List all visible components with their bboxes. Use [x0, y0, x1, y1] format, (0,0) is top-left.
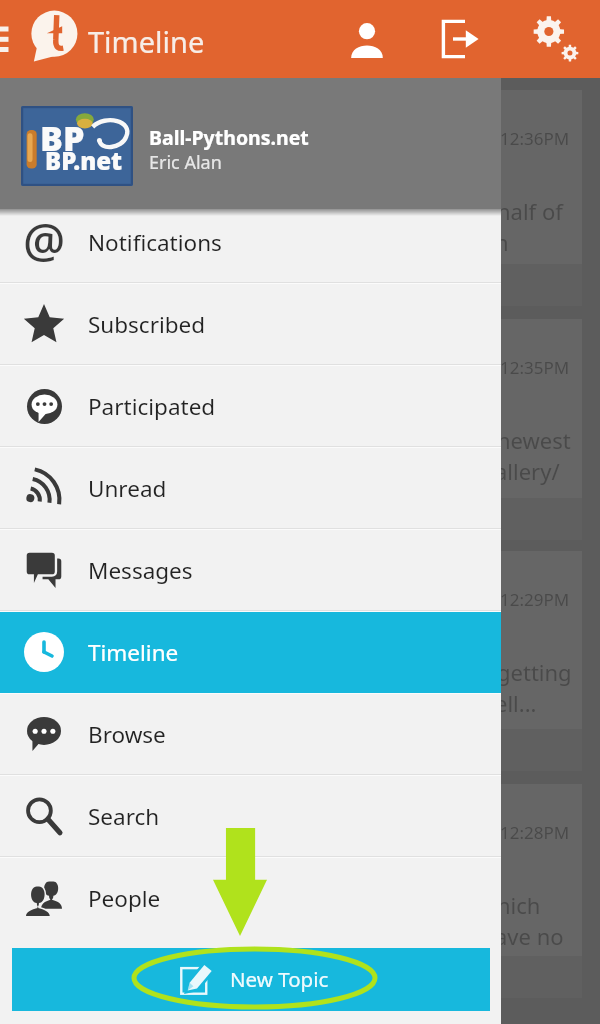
button[interactable]: Timeline [0, 611, 501, 693]
staticText: People [88, 883, 161, 914]
staticText: Timeline [88, 22, 205, 61]
staticText: Browse [88, 719, 166, 750]
button[interactable]: Settings [515, 0, 595, 78]
staticText: ell... [495, 688, 537, 718]
button[interactable]: New Topic [12, 948, 490, 1011]
button[interactable]: Unread [0, 447, 501, 529]
staticText: Search [88, 801, 160, 832]
staticText: half of [497, 196, 563, 226]
staticText: Participated [88, 391, 216, 422]
staticText: h [495, 227, 509, 257]
button[interactable]: Profile [327, 0, 407, 78]
button[interactable]: BP.net [0, 78, 501, 209]
staticText: Notifications [88, 227, 222, 258]
staticText: Timeline [88, 637, 179, 668]
button[interactable]: Search [0, 775, 501, 857]
staticText: Subscribed [88, 309, 206, 340]
staticText: 12:28PM [500, 821, 570, 844]
staticText: hich [497, 890, 541, 920]
button[interactable]: Browse [0, 693, 501, 775]
staticText: BP.net [45, 144, 123, 177]
button[interactable]: Participated [0, 365, 501, 447]
staticText: Messages [88, 555, 193, 586]
staticText: Eric Alan [149, 150, 222, 175]
button[interactable]: Open navigation drawer [0, 0, 20, 78]
button[interactable]: Log out [421, 0, 501, 78]
staticText: New Topic [230, 965, 329, 993]
staticText: Ball-Pythons.net [149, 124, 309, 151]
staticText: getting [497, 657, 572, 687]
staticText: @ [23, 208, 66, 272]
staticText: ave no [495, 921, 564, 951]
button[interactable]: Messages [0, 529, 501, 611]
staticText: allery/ [495, 456, 560, 486]
staticText: Unread [88, 473, 167, 504]
staticText: 12:36PM [500, 127, 570, 150]
staticText: newest [497, 425, 571, 455]
staticText: 12:35PM [500, 356, 570, 379]
button[interactable]: People [0, 857, 501, 939]
staticText: BP [40, 115, 85, 161]
staticText: 12:29PM [500, 588, 570, 611]
button[interactable]: @ [0, 201, 501, 283]
button[interactable]: Subscribed [0, 283, 501, 365]
